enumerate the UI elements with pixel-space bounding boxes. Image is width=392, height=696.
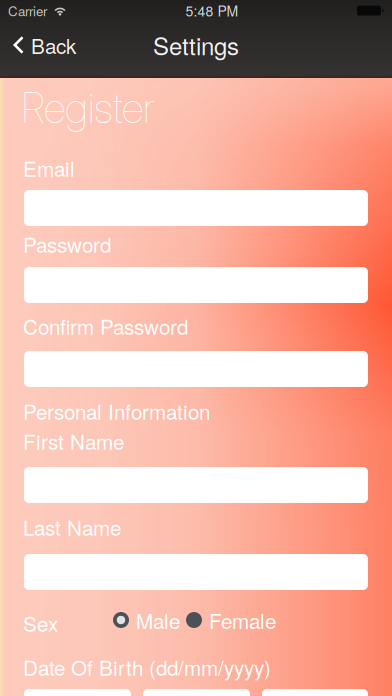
staticText: Settings	[153, 28, 239, 62]
button[interactable]	[24, 267, 368, 303]
staticText: Female	[209, 605, 276, 635]
staticText: Carrier	[8, 1, 47, 20]
button[interactable]	[143, 689, 250, 696]
staticText: Email	[23, 153, 75, 183]
button[interactable]	[262, 689, 368, 696]
staticText: Register	[21, 83, 154, 133]
staticText: Password	[23, 229, 111, 259]
button[interactable]: Back	[0, 23, 88, 67]
button[interactable]	[24, 554, 368, 590]
button[interactable]: Male	[113, 608, 180, 632]
staticText: 5:48 PM	[185, 0, 238, 20]
button[interactable]	[24, 351, 368, 387]
staticText: Personal Information	[23, 396, 210, 426]
button[interactable]	[24, 689, 131, 696]
staticText: Last Name	[23, 512, 121, 542]
staticText: Male	[136, 605, 180, 635]
staticText: Date Of Birth (dd/mm/yyyy)	[23, 652, 271, 682]
staticText: Confirm Password	[23, 311, 188, 341]
button[interactable]	[24, 467, 368, 503]
button[interactable]	[24, 190, 368, 226]
staticText: First Name	[23, 426, 124, 456]
staticText: Sex	[23, 608, 58, 638]
button[interactable]: Female	[186, 608, 276, 632]
staticText: Back	[31, 30, 76, 60]
